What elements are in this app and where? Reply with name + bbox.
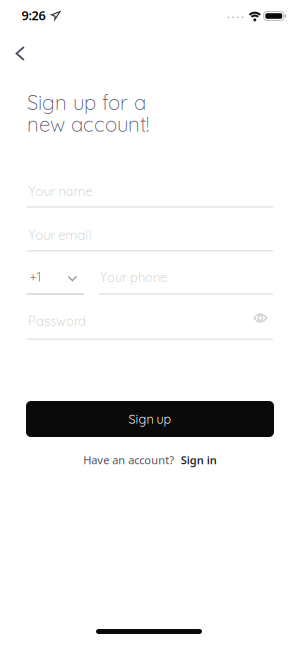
staticText: Password (28, 313, 86, 329)
button[interactable]: Show password (248, 308, 273, 328)
staticText: Sign up for a (27, 90, 146, 115)
staticText: Sign in (181, 452, 217, 468)
button[interactable]: Back (0, 36, 42, 71)
staticText: +1 (29, 268, 41, 285)
staticText: Have an account? (83, 452, 174, 468)
staticText: Your name (28, 183, 92, 199)
staticText: Your phone (100, 269, 167, 285)
staticText: Your email (28, 227, 91, 243)
button[interactable]: Sign in (181, 452, 217, 468)
button[interactable]: Country code +1 (27, 267, 84, 291)
staticText: Sign up (128, 411, 171, 427)
staticText: new account! (27, 111, 149, 137)
button[interactable]: Sign up (26, 401, 274, 437)
staticText: 9:26 (21, 7, 45, 24)
